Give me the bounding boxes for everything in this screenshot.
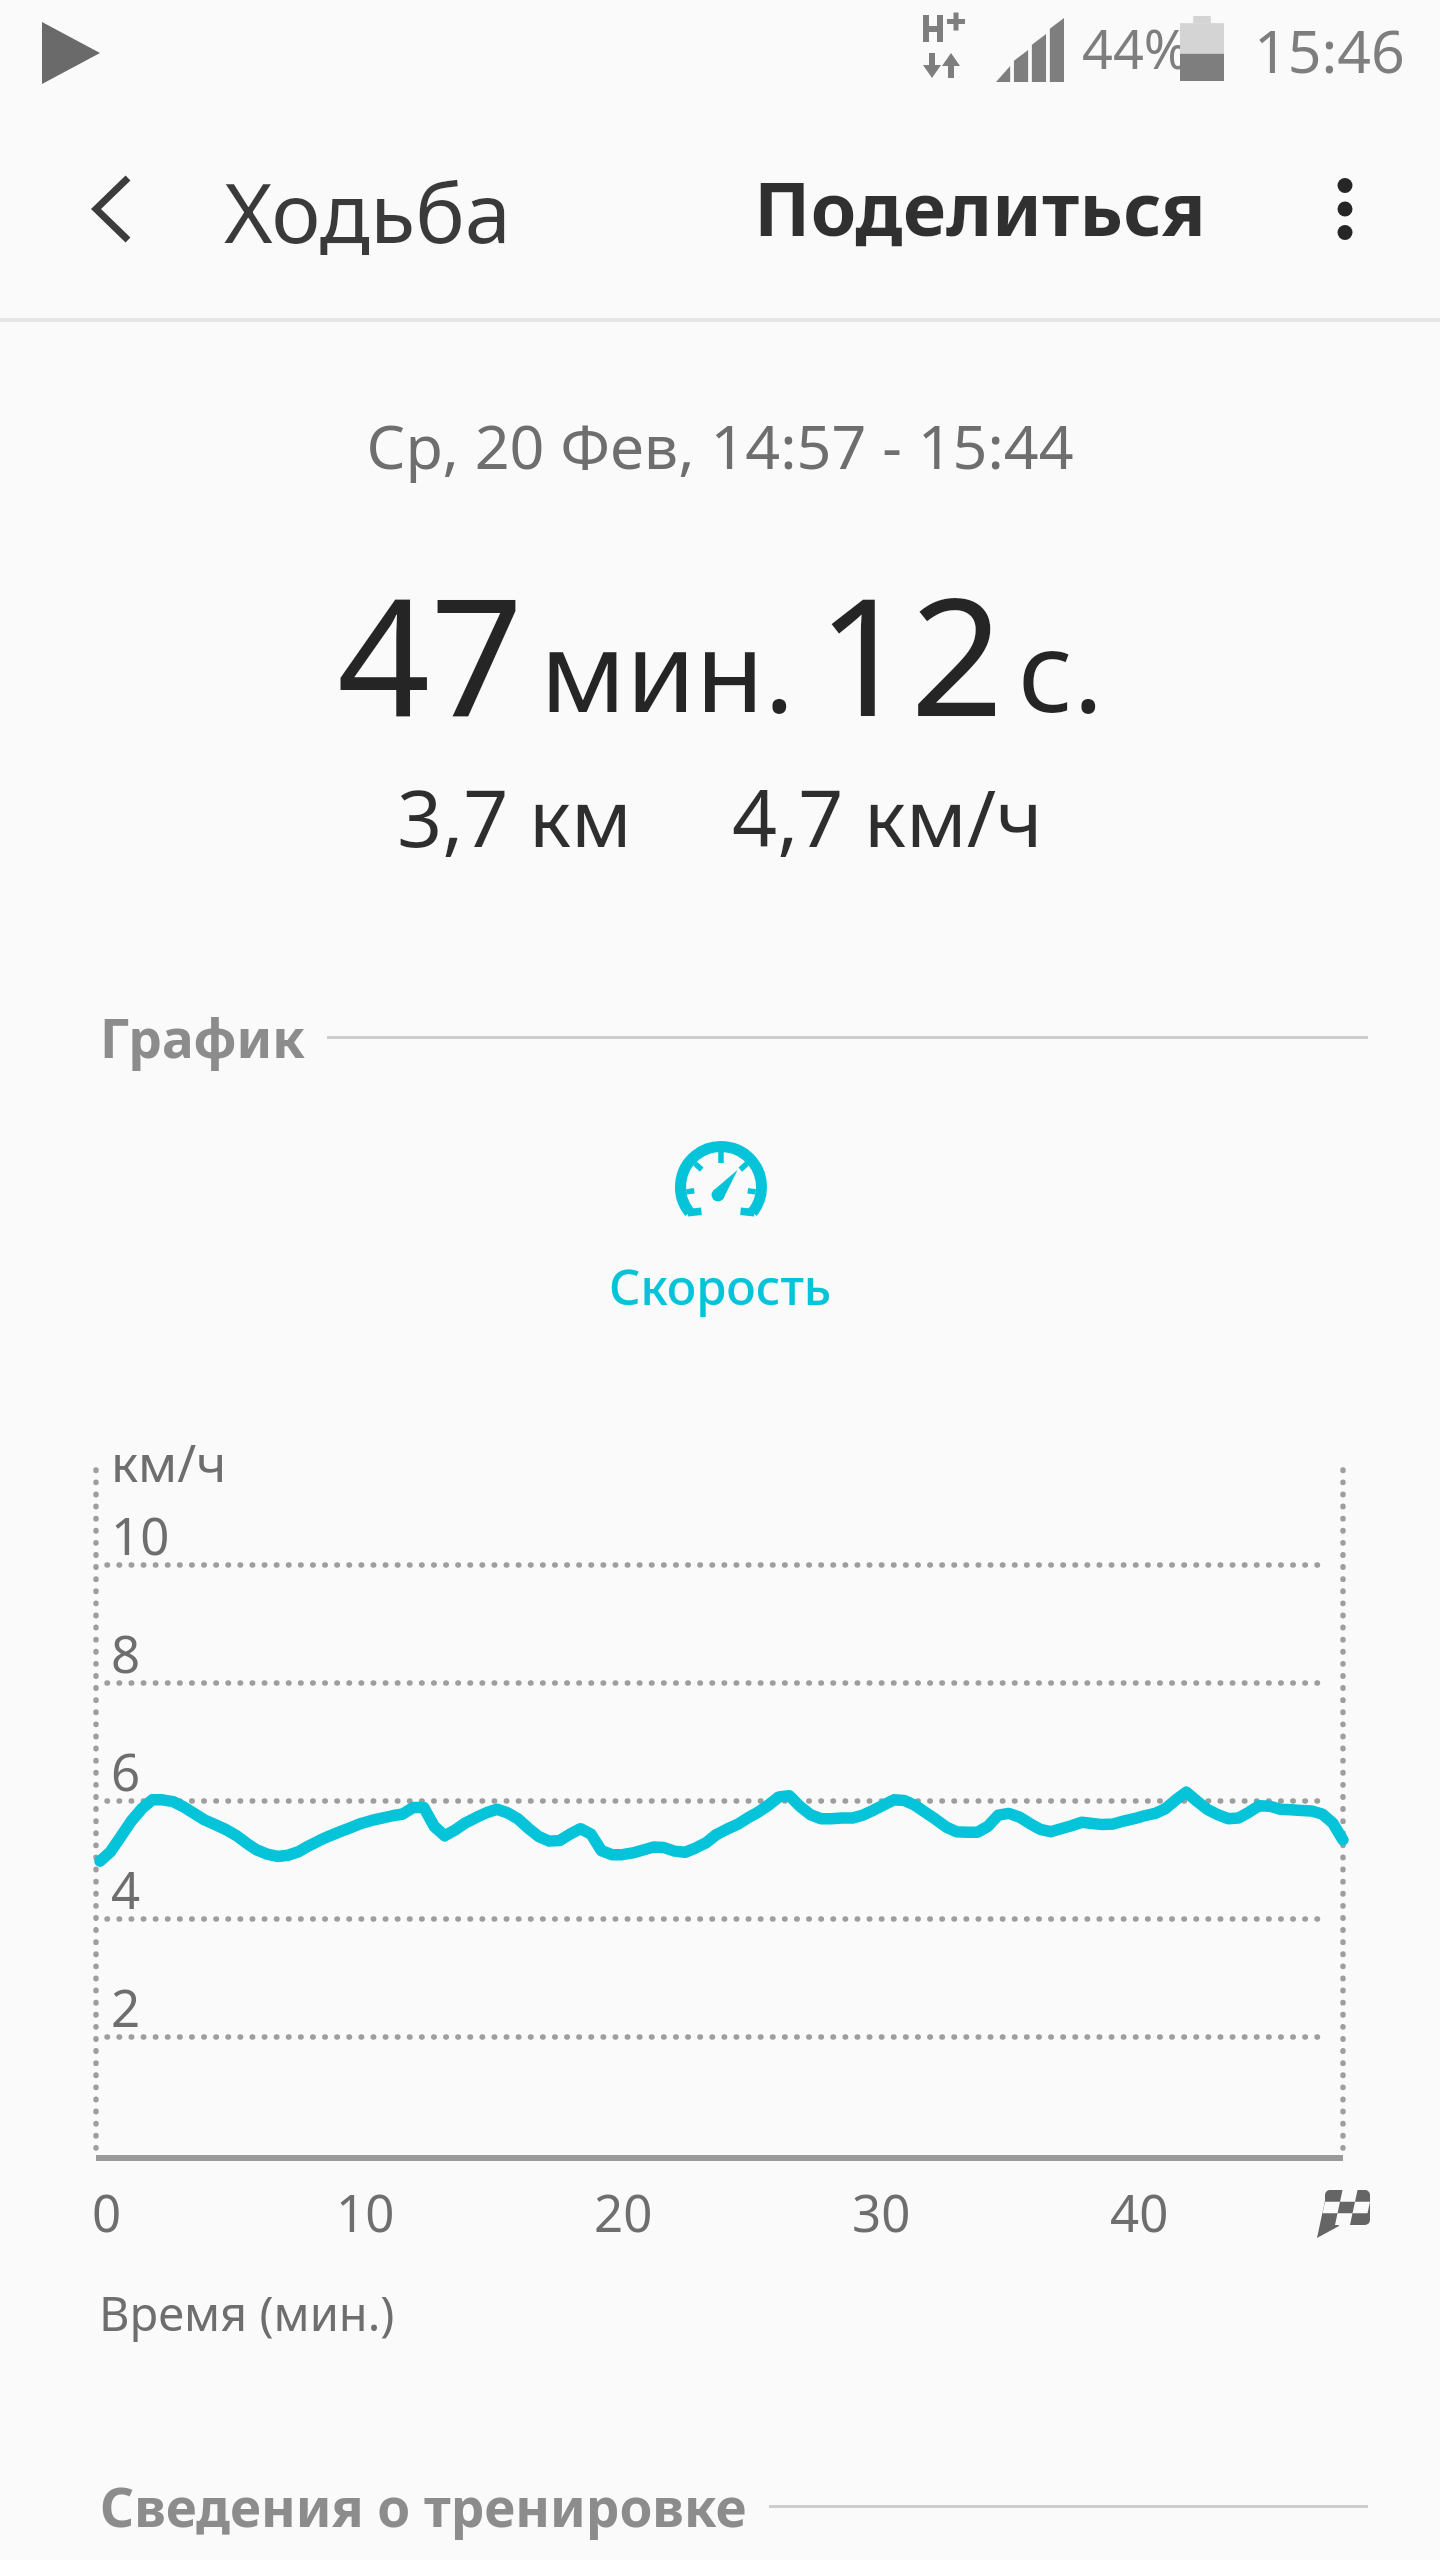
- staticText: 6: [111, 1736, 141, 1805]
- staticText: 47: [337, 542, 524, 764]
- staticText: 20: [594, 2177, 653, 2246]
- button[interactable]: More options: [1285, 149, 1405, 269]
- staticText: 8: [111, 1618, 141, 1687]
- staticText: с.: [1018, 592, 1104, 745]
- staticText: 2: [111, 1972, 141, 2041]
- staticText: 4: [111, 1854, 141, 1923]
- staticText: Ходьба: [224, 154, 511, 267]
- staticText: Время (мин.): [99, 2281, 395, 2345]
- staticText: 40: [1110, 2177, 1169, 2246]
- staticText: Поделиться: [754, 157, 1206, 258]
- staticText: 4,7 км/ч: [732, 763, 1043, 871]
- staticText: 12: [817, 542, 1004, 764]
- button[interactable]: Поделиться: [736, 139, 1224, 276]
- staticText: Сведения о тренировке: [100, 2470, 747, 2542]
- staticText: мин.: [540, 592, 795, 745]
- staticText: 44%: [1082, 11, 1189, 85]
- staticText: Скорость: [609, 1253, 832, 1320]
- staticText: Ср, 20 Фев, 14:57 - 15:44: [0, 404, 1440, 487]
- staticText: 15:46: [1254, 10, 1405, 90]
- staticText: График: [100, 1001, 305, 1073]
- button[interactable]: Скорость: [545, 1117, 896, 1344]
- staticText: 3,7 км: [397, 763, 632, 871]
- staticText: 10: [336, 2177, 395, 2246]
- staticText: 30: [852, 2177, 911, 2246]
- button[interactable]: Back: [50, 147, 174, 271]
- staticText: км/ч: [111, 1427, 227, 1496]
- staticText: 0: [92, 2177, 122, 2246]
- staticText: 10: [111, 1500, 170, 1569]
